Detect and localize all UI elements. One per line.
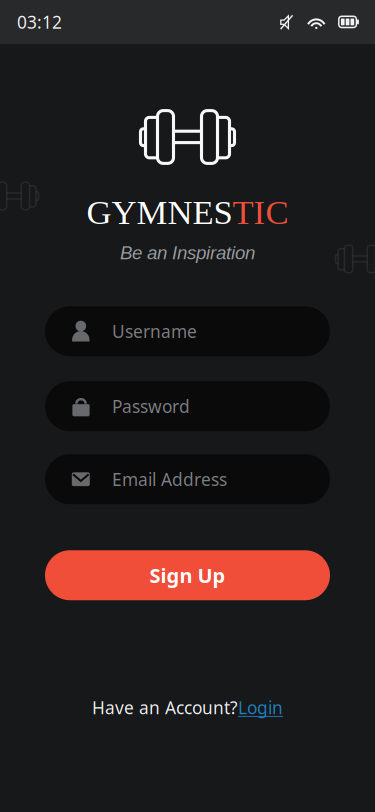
staticText: TIC [232,193,288,231]
staticText: Have an Account? [92,696,238,719]
staticText: Sign Up [149,562,225,589]
staticText: Login [238,696,283,719]
button[interactable]: Username [45,306,330,356]
staticText: Password [112,395,190,418]
staticText: Username [112,320,197,343]
button[interactable]: Have an Account? [86,691,289,724]
staticText: GYMNES [86,193,232,231]
button[interactable]: Email Address [45,454,330,504]
staticText: 03:12 [17,10,62,33]
button[interactable]: Password [45,381,330,431]
button[interactable]: Sign Up [45,550,330,600]
staticText: Be an Inspiration [120,242,255,263]
staticText: Email Address [112,468,227,491]
